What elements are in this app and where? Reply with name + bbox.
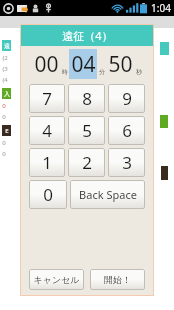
staticText: (2 [2,54,8,62]
staticText: 4 [42,119,52,142]
staticText: 分 [99,68,105,76]
button[interactable]: 1 [29,148,65,177]
staticText: (4 [2,76,8,84]
button[interactable]: hours [32,49,60,79]
staticText: 遠征（4） [62,28,113,43]
button[interactable]: seconds [106,49,134,79]
staticText: 入 [4,90,10,98]
staticText: (3 [2,65,8,73]
staticText: 1:04 [151,1,171,15]
button[interactable]: 2 [68,148,105,177]
staticText: 7 [42,87,52,110]
staticText: 3 [122,151,132,174]
staticText: 秒 [136,68,142,76]
button[interactable]: 3 [108,148,145,177]
button[interactable]: 9 [108,84,145,113]
button[interactable]: 5 [68,116,105,145]
staticText: 6 [122,119,132,142]
staticText: 0 [2,102,6,110]
staticText: 5 [82,119,92,142]
button[interactable]: 6 [108,116,145,145]
staticText: Back Space [79,187,137,202]
staticText: 0 [43,183,53,206]
staticText: 04 [71,50,96,79]
staticText: キャンセル [33,274,80,285]
staticText: 8 [82,87,92,110]
staticText: 2 [82,151,92,174]
button[interactable]: 8 [68,84,105,113]
button[interactable]: 0 [29,180,67,209]
staticText: 0 [2,139,6,147]
staticText: 9 [122,87,132,110]
button[interactable]: 4 [29,116,65,145]
button[interactable]: キャンセル [29,269,84,290]
staticText: 開始！ [104,274,131,285]
staticText: 0 [2,113,6,121]
button[interactable]: minutes [69,49,97,79]
staticText: 時 [62,68,68,76]
staticText: 0 [2,150,6,158]
staticText: 50 [108,50,133,79]
staticText: E [5,127,9,135]
staticText: 1 [42,151,52,174]
button[interactable]: 7 [29,84,65,113]
staticText: 遠 [4,42,10,50]
button[interactable]: Back Space [70,180,145,209]
button[interactable]: 開始！ [90,269,145,290]
staticText: 00 [34,50,59,79]
